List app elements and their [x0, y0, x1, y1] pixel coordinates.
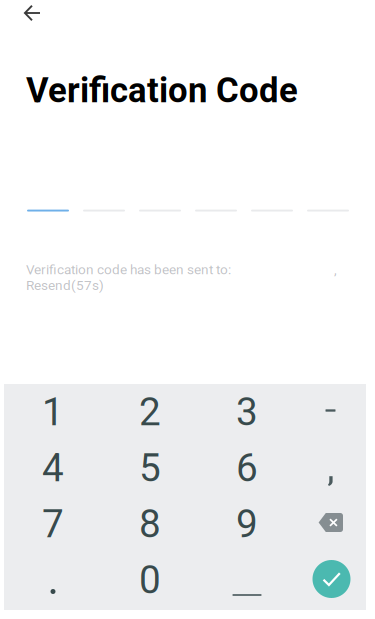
button[interactable]: 7	[4, 496, 101, 552]
button[interactable]: 6	[198, 440, 295, 496]
staticText: 3	[236, 389, 258, 435]
button[interactable]: Underscore	[198, 552, 295, 608]
button[interactable]: Period	[4, 552, 101, 608]
button[interactable]: 4	[4, 440, 101, 496]
button[interactable]: 2	[101, 384, 198, 440]
staticText: 4	[42, 445, 64, 491]
button[interactable]: 1	[4, 384, 101, 440]
staticText: 2	[139, 389, 161, 435]
staticText: 9	[236, 501, 258, 547]
staticText: 8	[139, 501, 161, 547]
staticText: 1	[42, 389, 64, 435]
button[interactable]: Comma	[295, 440, 365, 496]
button[interactable]: 0	[101, 552, 198, 608]
staticText: Verification code has been sent to:	[26, 261, 231, 277]
staticText: 6	[236, 445, 258, 491]
button[interactable]: 8	[101, 496, 198, 552]
staticText: 0	[139, 557, 161, 603]
staticText: Resend(57s)	[26, 277, 104, 293]
button[interactable]: Delete	[295, 496, 365, 552]
staticText: Verification Code	[26, 70, 298, 111]
staticText: 5	[139, 445, 161, 491]
button[interactable]: 5	[101, 440, 198, 496]
staticText: ,	[334, 261, 337, 277]
staticText: 7	[42, 501, 64, 547]
button[interactable]: Back	[18, 0, 58, 26]
button[interactable]: 3	[198, 384, 295, 440]
button[interactable]: Confirm	[295, 552, 365, 608]
button[interactable]: Resend(57s)	[26, 277, 104, 293]
button[interactable]: Dash	[295, 384, 365, 440]
button[interactable]: 9	[198, 496, 295, 552]
